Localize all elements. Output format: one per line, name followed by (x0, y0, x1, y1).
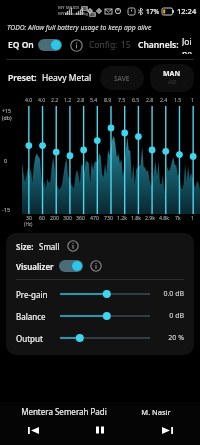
button[interactable]: EQ On (8, 37, 62, 53)
staticText: M. Nasir (141, 407, 171, 417)
staticText: 7.5 (118, 96, 126, 103)
staticText: 470 (90, 214, 99, 221)
staticText: 0 (4, 157, 8, 164)
staticText: 4.8k (159, 214, 170, 221)
staticText: (db) (2, 114, 12, 121)
staticText: 15 (121, 39, 131, 51)
staticText: Config: (89, 39, 118, 51)
staticText: 5.4 (90, 96, 98, 103)
staticText: 6.5 (132, 96, 140, 103)
staticText: 0 dB (154, 311, 184, 321)
staticText: 360 (76, 214, 85, 221)
staticText: 4G (82, 6, 87, 11)
staticText: 17% (146, 7, 159, 16)
button[interactable]: Heavy Metal (42, 72, 92, 84)
button[interactable]: Info (67, 240, 79, 252)
staticText: 2.8 (77, 96, 85, 103)
staticText: SAVE (114, 74, 130, 83)
staticText: 2.2 (51, 96, 59, 103)
staticText: MY MAXIS (58, 5, 80, 11)
staticText: 730 (104, 214, 113, 221)
staticText: 30 (26, 214, 32, 221)
button[interactable]: Toggle (38, 39, 62, 51)
staticText: EQ On (8, 39, 34, 51)
staticText: 20 % (154, 333, 184, 343)
button[interactable]: Output (16, 331, 184, 345)
staticText: 1.2k (117, 214, 128, 221)
staticText: 60 (39, 214, 45, 221)
staticText: Preset: (8, 72, 37, 84)
staticText: +15 (2, 107, 11, 114)
staticText: 300 (63, 214, 72, 221)
staticText: (Hz) (24, 221, 33, 227)
staticText: 1.8k (131, 214, 142, 221)
staticText: Balance (16, 311, 58, 322)
button[interactable]: Info (90, 260, 102, 272)
button[interactable]: SAVE (100, 66, 144, 90)
staticText: 4.0 (38, 96, 46, 103)
staticText: 12:24 (177, 6, 197, 16)
staticText: Small (39, 241, 60, 252)
staticText: Pre-gain (16, 289, 58, 300)
button[interactable]: MAN (150, 64, 194, 92)
staticText: MY CelcomDig (58, 11, 88, 17)
staticText: 4G (90, 12, 95, 17)
staticText: 1.5 (174, 96, 182, 103)
staticText: 200 (50, 214, 59, 221)
button[interactable]: Equalizer graph (22, 106, 200, 214)
staticText: AGE (168, 79, 177, 85)
button[interactable]: Toggle (59, 260, 83, 272)
staticText: 2.8 (146, 96, 154, 103)
staticText: MAN (163, 69, 181, 79)
staticText: Output (16, 333, 58, 344)
staticText: 2.9k (145, 214, 156, 221)
staticText: 2.4 (160, 96, 168, 103)
staticText: Size: (16, 241, 34, 252)
button[interactable]: Balance (16, 309, 184, 323)
staticText: TODO: Allow full battery usage to keep a… (7, 23, 152, 32)
staticText: 1.2 (64, 96, 72, 103)
staticText: 0.0 dB (154, 289, 184, 299)
button[interactable]: Previous (22, 419, 44, 441)
staticText: 8.9 (104, 96, 112, 103)
staticText: 1 (191, 96, 194, 103)
staticText: Visualizer (16, 261, 54, 272)
staticText: 7k (175, 214, 181, 221)
button[interactable]: Size: (16, 240, 184, 252)
staticText: Joined (182, 36, 194, 54)
staticText: Mentera Semerah Padi (21, 406, 107, 417)
button[interactable]: Pause (89, 419, 111, 441)
button[interactable]: Visualizer (16, 260, 184, 272)
staticText: Channels: (138, 39, 179, 51)
staticText: 4.0 (25, 96, 33, 103)
staticText: -15 (2, 206, 11, 213)
button[interactable]: Next (156, 419, 178, 441)
staticText: 1 (191, 214, 194, 221)
staticText: Heavy Metal (42, 72, 92, 84)
button[interactable]: Info (70, 39, 83, 52)
button[interactable]: Pre-gain (16, 287, 184, 301)
